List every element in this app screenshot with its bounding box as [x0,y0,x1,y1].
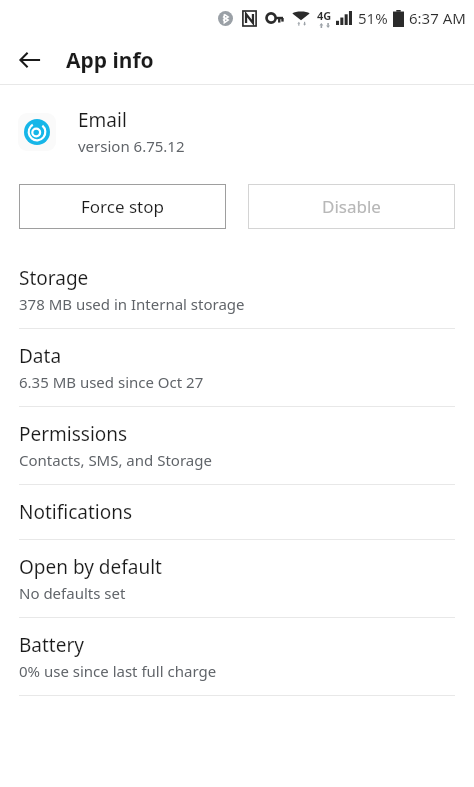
button[interactable]: Battery [0,618,474,695]
staticText: 0% use since last full charge [19,661,217,681]
button[interactable]: Disable [248,184,455,229]
staticText: Storage [19,265,89,291]
staticText: 4G [317,8,332,23]
staticText: App info [66,46,154,75]
button[interactable]: Storage [0,251,474,328]
staticText: Notifications [19,499,133,525]
button[interactable]: Back [8,38,52,82]
staticText: Battery [19,632,84,658]
staticText: No defaults set [19,583,126,603]
staticText: Force stop [81,195,164,218]
button[interactable]: Data [0,329,474,406]
staticText: 6:37 AM [409,8,466,28]
staticText: Open by default [19,554,162,580]
staticText: 378 MB used in Internal storage [19,294,245,314]
staticText: Contacts, SMS, and Storage [19,450,212,470]
staticText: version 6.75.12 [78,136,185,156]
button[interactable]: Email [18,107,456,156]
button[interactable]: Force stop [19,184,226,229]
staticText: 6.35 MB used since Oct 27 [19,372,204,392]
staticText: Email [78,107,127,133]
staticText: Data [19,343,62,369]
staticText: Disable [322,195,381,218]
staticText: 51% [358,8,388,28]
button[interactable]: Open by default [0,540,474,617]
button[interactable]: Notifications [0,485,474,539]
staticText: Permissions [19,421,128,447]
button[interactable]: Permissions [0,407,474,484]
